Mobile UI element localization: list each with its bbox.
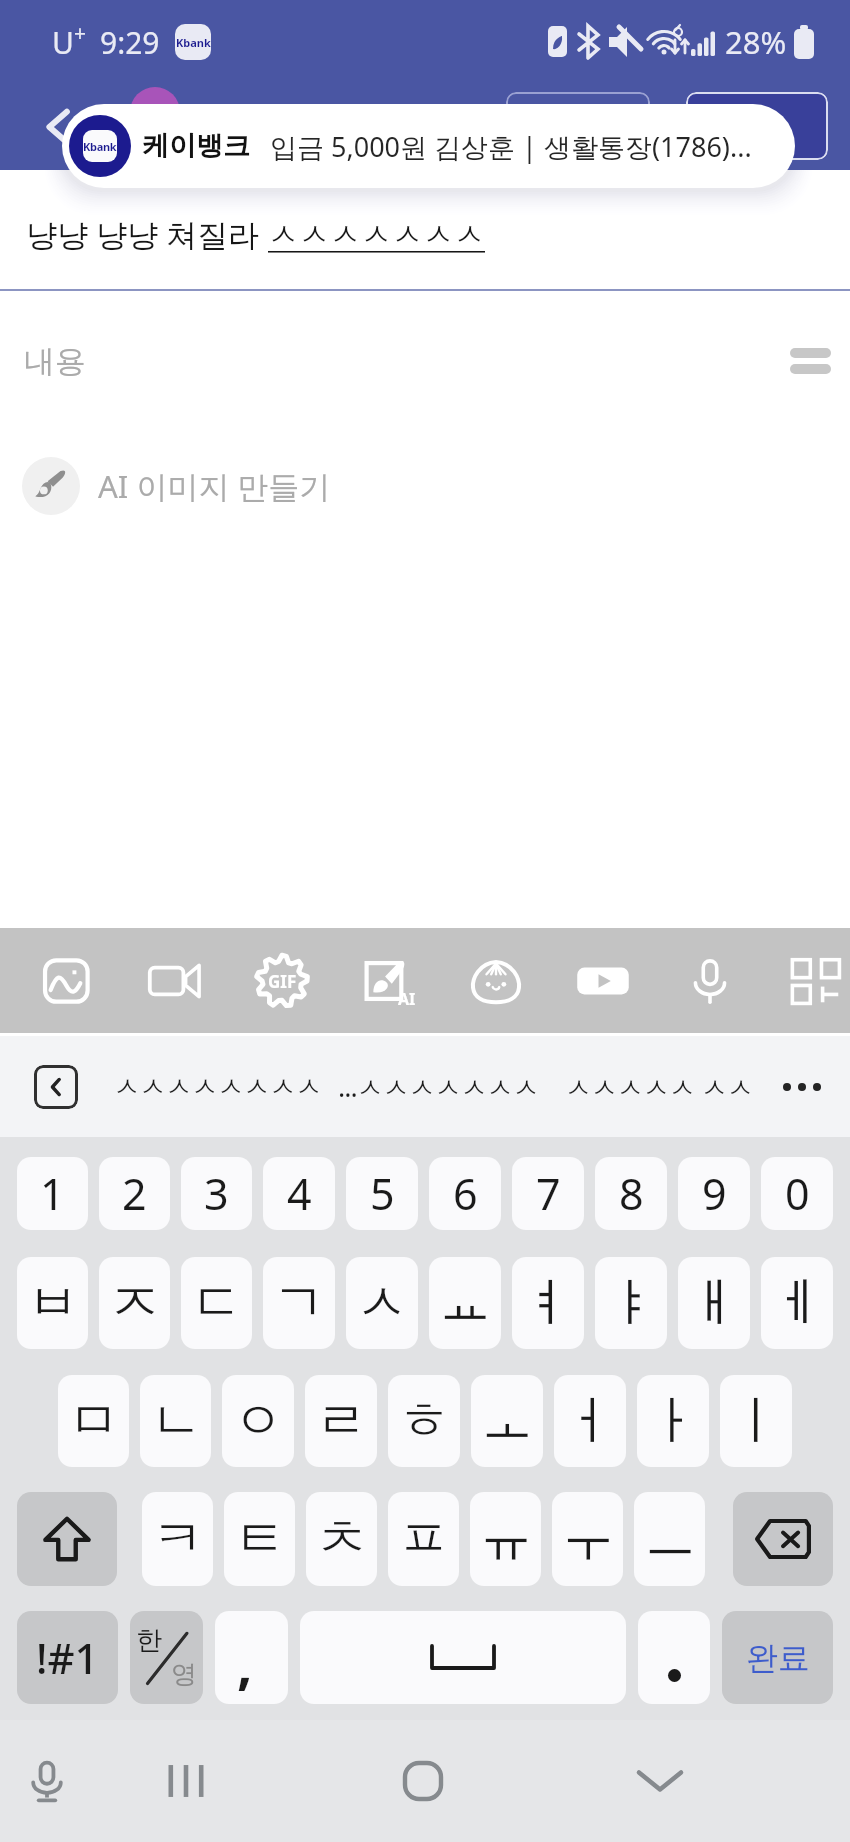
staticText: ㅂ xyxy=(27,1270,79,1336)
staticText: 2 xyxy=(122,1164,147,1223)
staticText: 9 xyxy=(702,1164,727,1223)
button[interactable]: ㅊ xyxy=(306,1492,377,1586)
button[interactable]: ㄹ xyxy=(305,1375,377,1467)
staticText: ㅛ xyxy=(439,1270,491,1336)
button[interactable]: ㄱ xyxy=(263,1257,335,1349)
button[interactable]: ㅅ xyxy=(346,1257,418,1349)
button[interactable]: Recents xyxy=(139,1720,233,1842)
button[interactable]: ㅈ xyxy=(99,1257,170,1349)
button[interactable]: ㅋ xyxy=(142,1492,213,1586)
staticText: 28% xyxy=(725,21,787,63)
staticText: ㅔ xyxy=(771,1270,823,1336)
staticText: AI 이미지 만들기 xyxy=(98,465,331,507)
button[interactable]: 0 xyxy=(761,1157,833,1230)
button[interactable]: ㅜ xyxy=(552,1492,623,1586)
staticText: ㅊ xyxy=(316,1506,368,1572)
staticText: ㅏ xyxy=(647,1388,699,1454)
staticText: ㅋ xyxy=(152,1506,204,1572)
staticText: ㅕ xyxy=(522,1270,574,1336)
button[interactable]: 7 xyxy=(512,1157,584,1230)
staticText: ㄴ xyxy=(150,1388,202,1454)
button[interactable]: 2 xyxy=(99,1157,170,1230)
button[interactable]: Sticker xyxy=(442,928,550,1033)
button[interactable]: ㅡ xyxy=(634,1492,705,1586)
staticText: 7 xyxy=(536,1164,561,1223)
staticText: !#1 xyxy=(36,1629,99,1686)
staticText: 임시저장 xyxy=(528,111,628,142)
button[interactable]: ㅐ xyxy=(678,1257,750,1349)
button[interactable]: ㄷ xyxy=(181,1257,252,1349)
staticText: + xyxy=(74,19,87,48)
button[interactable]: ㅠ xyxy=(470,1492,541,1586)
button[interactable]: ...ㅅㅅㅅㅅㅅㅅㅅ xyxy=(336,1068,541,1105)
button[interactable]: AI drawing xyxy=(335,928,443,1033)
button[interactable]: ㅛ xyxy=(429,1257,501,1349)
button[interactable]: ㄴ xyxy=(140,1375,211,1467)
staticText: Kbank xyxy=(83,139,117,154)
staticText: ㅅㅅㅅㅅㅅㅅㅅㅅ xyxy=(114,1070,322,1104)
staticText: Kbank xyxy=(176,35,211,50)
button[interactable]: Space xyxy=(300,1611,626,1704)
button[interactable]: Korean English toggle xyxy=(130,1611,203,1704)
button[interactable]: ㅎ xyxy=(388,1375,460,1467)
staticText: 0 xyxy=(785,1164,810,1223)
staticText: GIF xyxy=(268,970,297,993)
button[interactable]: 6 xyxy=(429,1157,501,1230)
button[interactable]: Hide keyboard xyxy=(613,1720,707,1842)
button[interactable]: Backspace xyxy=(733,1492,833,1586)
button[interactable]: Shift xyxy=(17,1492,117,1586)
staticText: 9:29 xyxy=(100,22,160,63)
button[interactable]: Back xyxy=(28,84,92,170)
button[interactable]: ㅕ xyxy=(512,1257,584,1349)
staticText: ㅅ xyxy=(356,1270,408,1336)
button[interactable]: ㅔ xyxy=(761,1257,833,1349)
button[interactable]: Previous suggestions xyxy=(34,1065,78,1109)
button[interactable]: ㅇ xyxy=(222,1375,294,1467)
button[interactable]: ㅂ xyxy=(17,1257,88,1349)
staticText: ㄷ xyxy=(191,1270,243,1336)
staticText: ㅅㅅㅅㅅㅅ ㅅㅅ xyxy=(565,1068,754,1105)
button[interactable]: 9 xyxy=(678,1157,750,1230)
staticText: 3 xyxy=(204,1164,229,1223)
staticText: ㅅㅅㅅㅅㅅㅅㅅ xyxy=(268,215,485,254)
button[interactable]: 4 xyxy=(263,1157,335,1230)
staticText: 입금 5,000원 김상훈 | 생활통장(1786)... xyxy=(270,128,752,165)
staticText: ㅑ xyxy=(605,1270,657,1336)
button[interactable]: GIF xyxy=(228,928,336,1033)
button[interactable]: ㅅㅅㅅㅅㅅ ㅅㅅ xyxy=(563,1068,756,1105)
button[interactable]: Kbank xyxy=(62,104,795,188)
button[interactable]: ㅅㅅㅅㅅㅅㅅㅅㅅ xyxy=(112,1070,324,1104)
button[interactable]: ㅁ xyxy=(58,1375,129,1467)
button[interactable]: ㅗ xyxy=(471,1375,543,1467)
button[interactable]: Home xyxy=(376,1720,470,1842)
button[interactable] xyxy=(638,1611,710,1704)
button[interactable]: 8 xyxy=(595,1157,667,1230)
button[interactable]: Formatting xyxy=(778,329,842,393)
button[interactable]: 1 xyxy=(17,1157,88,1230)
staticText: ㅡ xyxy=(644,1506,696,1572)
button[interactable]: ㅏ xyxy=(637,1375,709,1467)
button[interactable]: 완료 xyxy=(722,1611,833,1704)
staticText: 내용 xyxy=(24,342,86,381)
button[interactable]: ㅓ xyxy=(554,1375,626,1467)
staticText: U xyxy=(52,22,74,63)
button[interactable]: Voice xyxy=(656,928,764,1033)
button[interactable]: 3 xyxy=(181,1157,252,1230)
button[interactable]: ㅣ xyxy=(720,1375,792,1467)
button[interactable]: ㅌ xyxy=(224,1492,295,1586)
button[interactable]: 임시저장 xyxy=(506,92,650,160)
button[interactable]: AI 이미지 만들기 xyxy=(22,448,850,524)
button[interactable]: More suggestions xyxy=(774,1059,830,1115)
button[interactable]: , xyxy=(215,1611,288,1704)
button[interactable]: ㅍ xyxy=(388,1492,459,1586)
button[interactable]: More xyxy=(763,928,850,1033)
button[interactable]: Video xyxy=(121,928,229,1033)
button[interactable]: Video clip xyxy=(549,928,657,1033)
button[interactable]: ㅑ xyxy=(595,1257,667,1349)
button[interactable]: 5 xyxy=(346,1157,418,1230)
button[interactable]: Voice input xyxy=(0,1720,94,1842)
button[interactable]: !#1 xyxy=(17,1611,118,1704)
button[interactable]: Image xyxy=(14,928,122,1033)
button[interactable]: 등록 xyxy=(686,92,828,160)
staticText: ㅜ xyxy=(562,1506,614,1572)
